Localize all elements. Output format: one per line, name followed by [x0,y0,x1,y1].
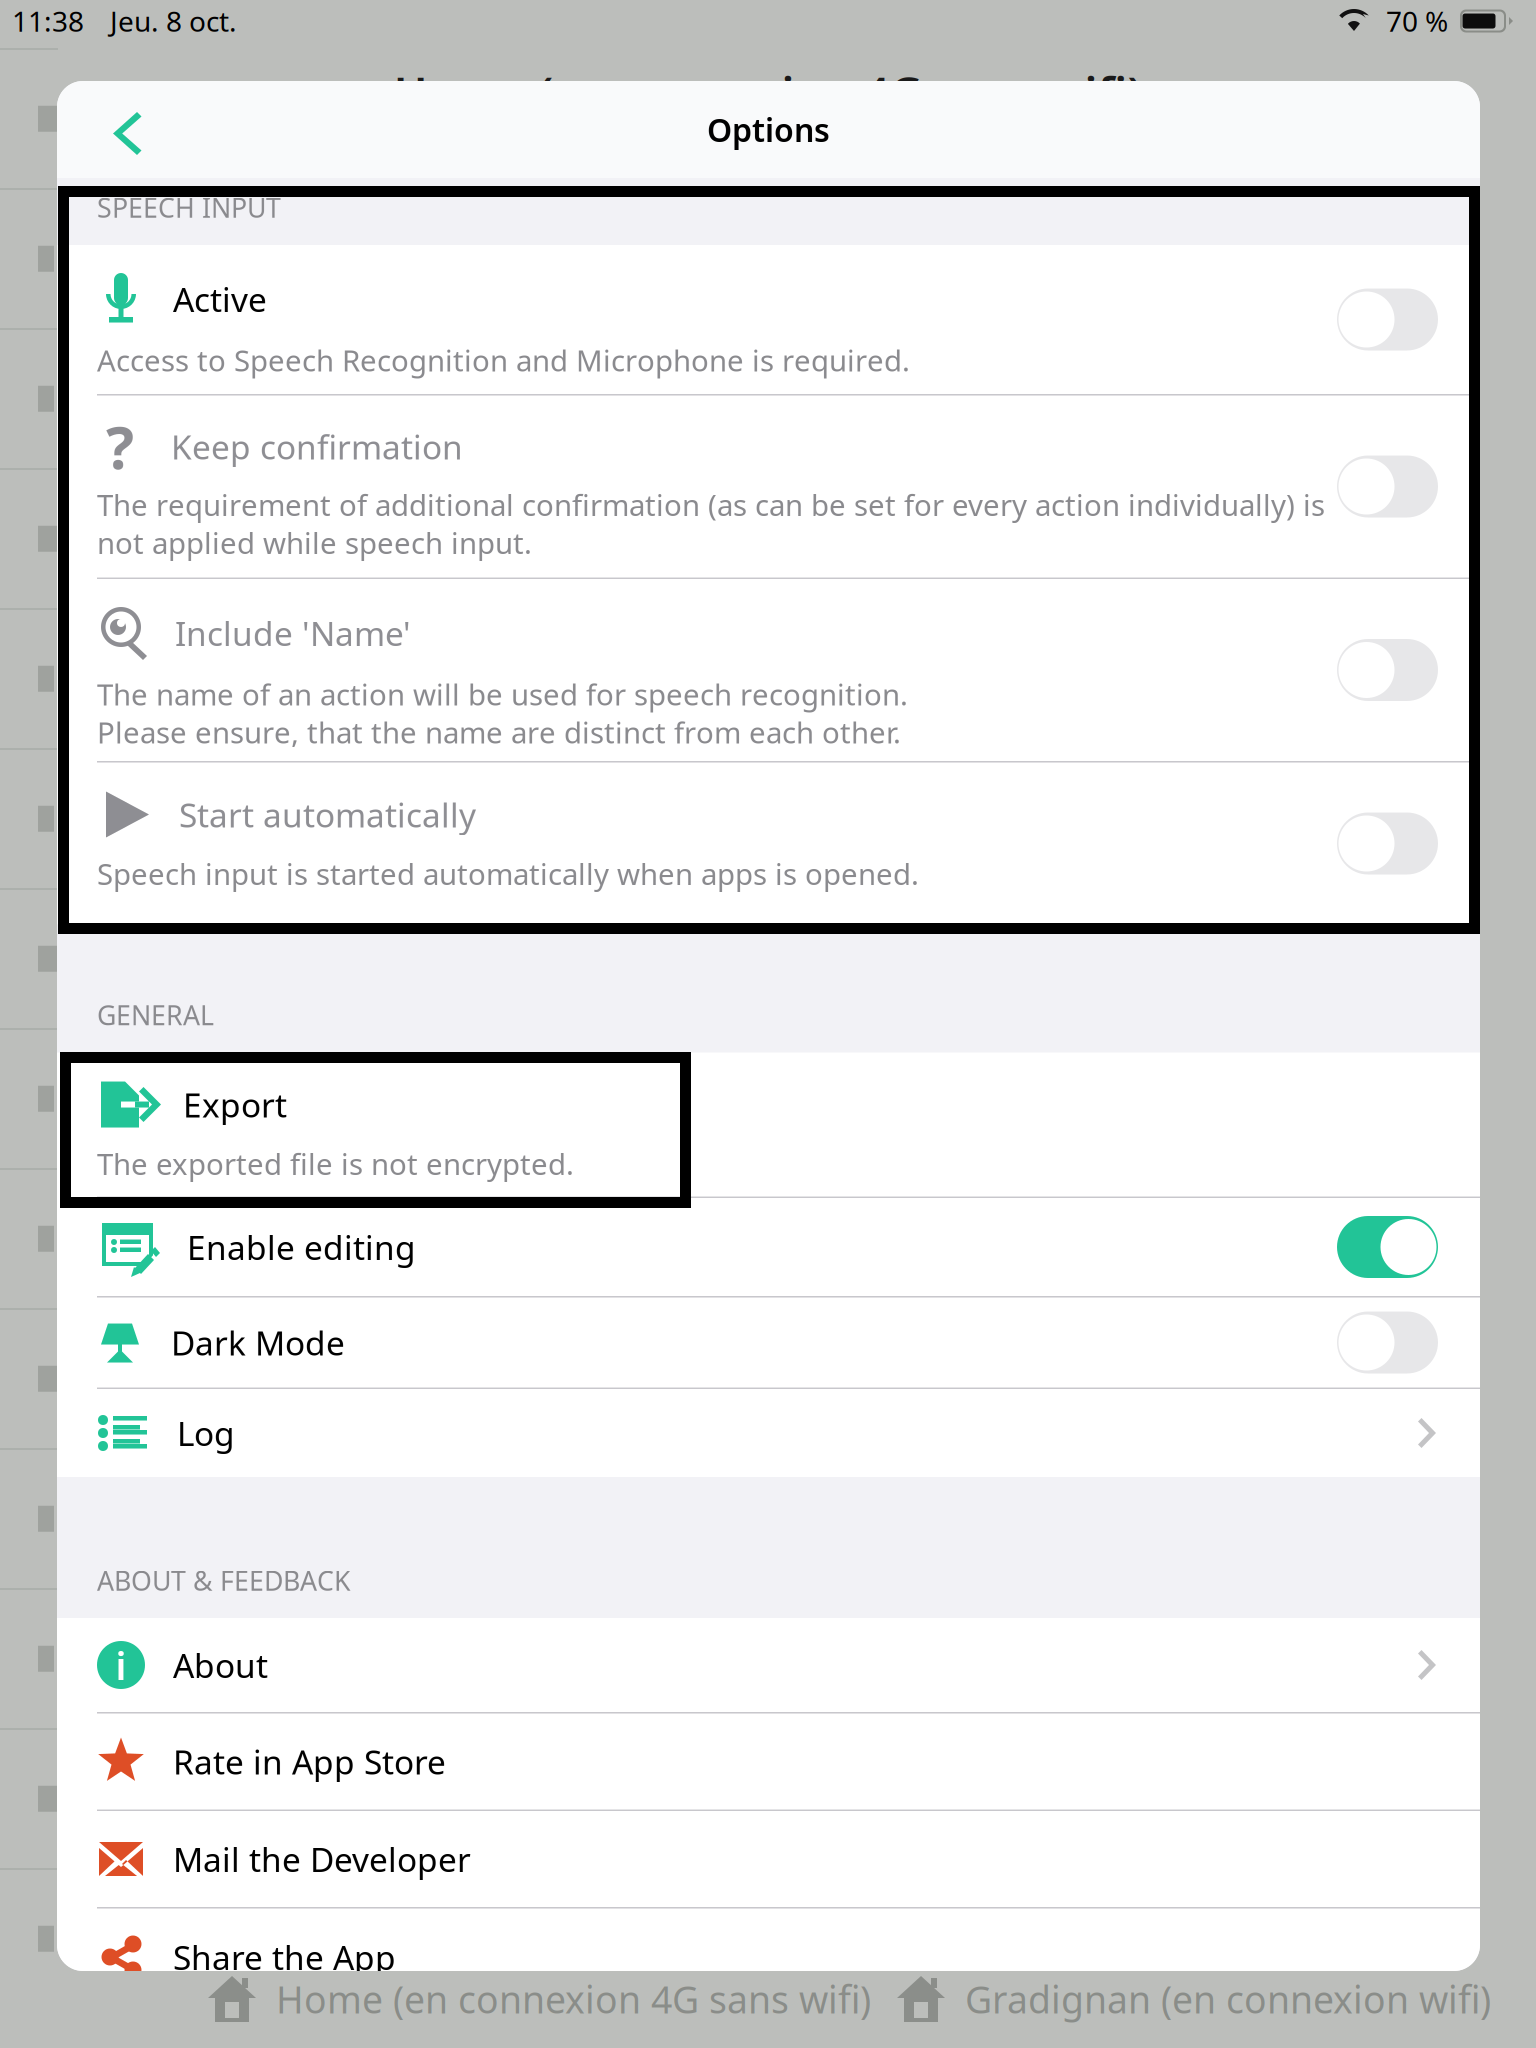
button[interactable]: Mail the Developer [57,1811,1480,1907]
staticText: The name of an action will be used for s… [97,674,908,713]
staticText: Log [177,1411,235,1455]
button[interactable]: ? [57,395,1480,577]
staticText: GENERAL [97,997,214,1032]
button[interactable]: Dark Mode [57,1297,1480,1387]
button[interactable]: Log [57,1389,1480,1477]
staticText: Rate in App Store [173,1739,446,1784]
staticText: SPEECH INPUT [97,190,281,225]
staticText: Dark Mode [171,1320,345,1365]
staticText: Access to Speech Recognition and Microph… [97,340,910,379]
button[interactable]: i [57,1618,1480,1712]
button[interactable]: Start automatically [57,762,1480,924]
staticText: Start automatically [179,792,476,837]
button[interactable]: Share the App [57,1908,1480,2005]
staticText: Please ensure, that the name are distinc… [97,712,901,751]
staticText: ABOUT & FEEDBACK [97,1563,351,1598]
button[interactable]: Enable editing [57,1198,1480,1296]
staticText: Home (en connexion 4G sans wifi) [276,1974,871,2024]
staticText: Jeu. 8 oct. [110,2,237,40]
staticText: i [115,1639,126,1691]
staticText: not applied while speech input. [97,523,532,562]
button[interactable]: Active [57,245,1480,394]
staticText: The requirement of additional confirmati… [97,485,1325,524]
staticText: Gradignan (en connexion wifi) [965,1974,1491,2024]
staticText: About [173,1643,268,1687]
staticText: Home (en connexion 4G sans wifi) [393,62,1142,122]
button[interactable]: Export [57,1052,1480,1196]
staticText: 11:38 [12,2,84,40]
staticText: Speech input is started automatically wh… [97,854,919,893]
staticText: 70 % [1386,2,1448,40]
staticText: The exported file is not encrypted. [97,1144,574,1183]
staticText: Options [707,108,830,151]
staticText: Include 'Name' [175,611,411,655]
staticText: Enable editing [187,1225,416,1269]
button[interactable]: Back [57,81,166,178]
button[interactable]: Include 'Name' [57,579,1480,761]
staticText: Active [173,277,267,321]
staticText: Share the App [173,1935,396,1979]
button[interactable]: Rate in App Store [57,1713,1480,1809]
staticText: ? [106,407,134,485]
staticText: Export [183,1082,287,1127]
staticText: Mail the Developer [173,1837,471,1881]
staticText: Keep confirmation [171,424,463,469]
